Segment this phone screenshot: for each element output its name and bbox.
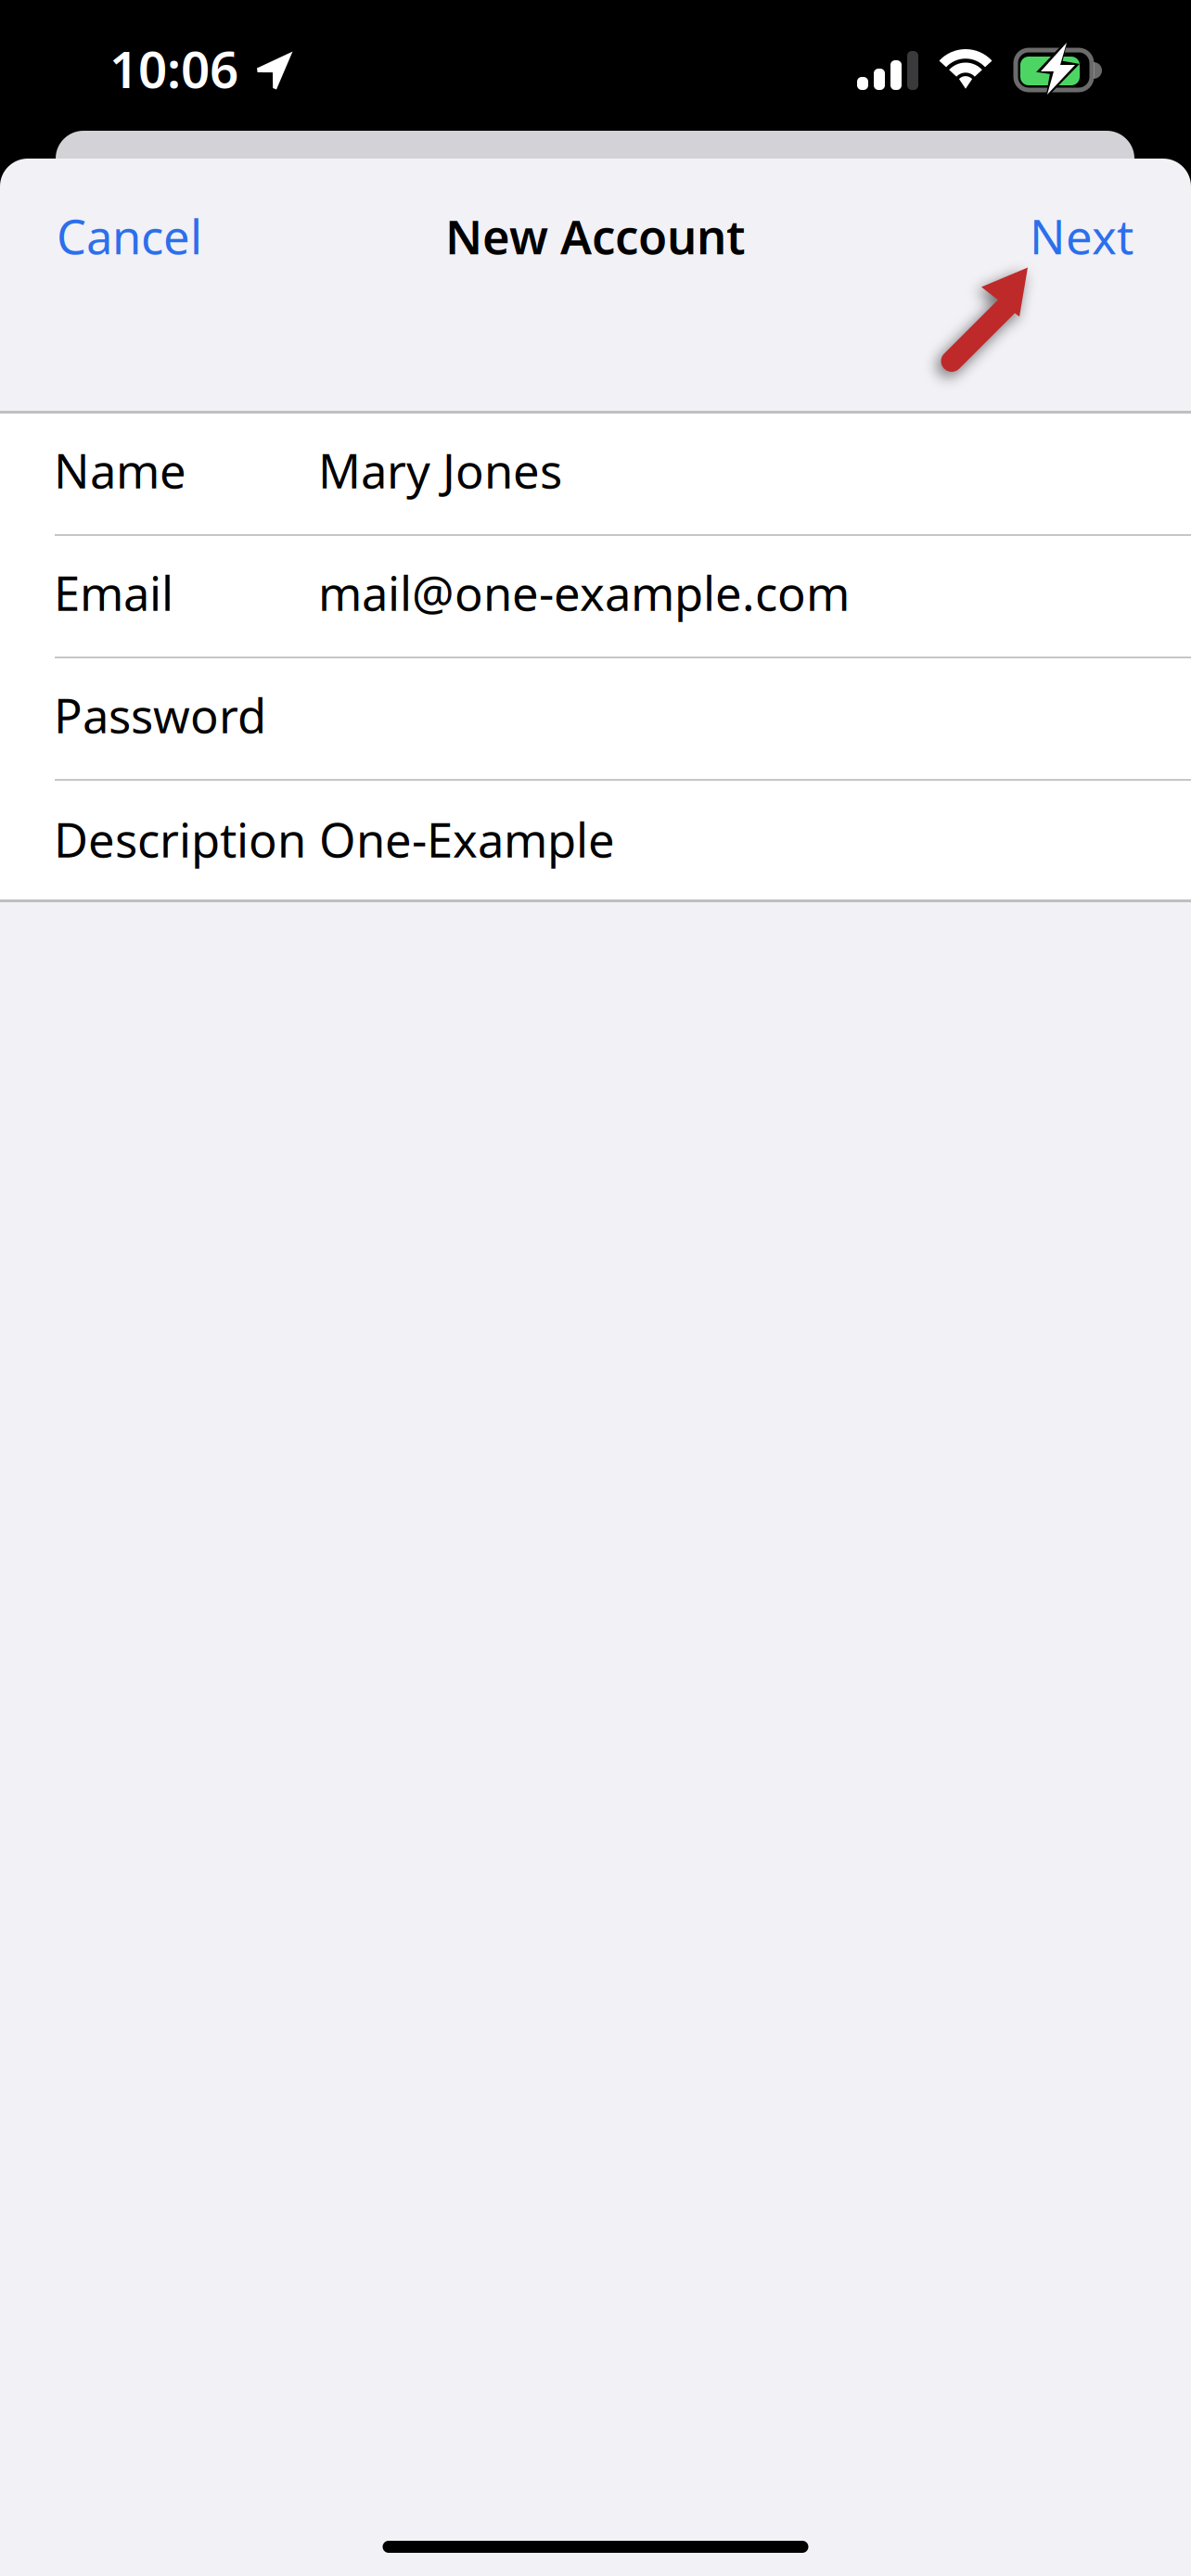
button[interactable]: Next <box>1030 205 1133 267</box>
staticText: Next <box>1030 205 1133 267</box>
button[interactable]: Description <box>0 781 1191 899</box>
staticText: Description <box>54 808 306 870</box>
staticText: Email <box>54 561 173 624</box>
staticText: mail@one-example.com <box>318 561 850 624</box>
button[interactable]: Name <box>0 414 1191 536</box>
staticText: 10:06 <box>109 35 238 102</box>
staticText: One-Example <box>319 808 615 870</box>
staticText: New Account <box>445 205 746 267</box>
staticText: Name <box>54 439 186 501</box>
button[interactable]: Email <box>0 536 1191 658</box>
staticText: Cancel <box>57 205 202 267</box>
button[interactable]: Password <box>0 658 1191 781</box>
staticText: Password <box>54 684 266 746</box>
staticText: Mary Jones <box>318 439 562 501</box>
button[interactable]: Cancel <box>57 205 202 267</box>
